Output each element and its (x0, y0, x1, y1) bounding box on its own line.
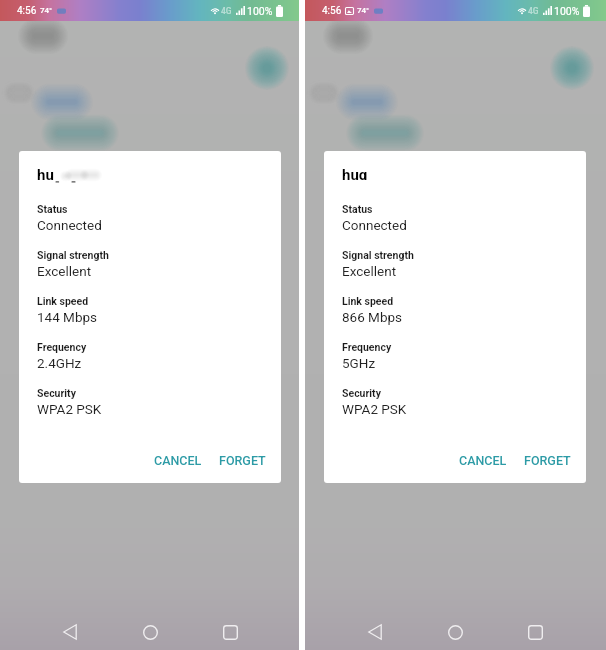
staticText: WPA2 PSK (342, 401, 407, 417)
staticText: Link speed (37, 295, 89, 307)
staticText: Security (342, 387, 381, 399)
staticText: hug (342, 166, 368, 180)
staticText: FORGET (524, 453, 571, 468)
button[interactable]: CANCEL (455, 447, 511, 474)
staticText: Excellent (37, 263, 92, 279)
staticText: Signal strength (342, 249, 414, 261)
staticText: Status (37, 203, 68, 215)
staticText: Connected (342, 217, 407, 233)
staticText: Security (37, 387, 76, 399)
staticText: Frequency (37, 341, 87, 353)
staticText: WPA2 PSK (37, 401, 102, 417)
button[interactable]: Back (50, 612, 90, 650)
staticText: Link speed (342, 295, 394, 307)
staticText: CANCEL (459, 453, 507, 468)
staticText: Signal strength (37, 249, 109, 261)
button[interactable]: Home (130, 612, 170, 650)
staticText: 74° (357, 6, 370, 15)
button[interactable]: Recent apps (210, 612, 250, 650)
button[interactable]: Recent apps (515, 612, 555, 650)
staticText: 5GHz (342, 355, 376, 371)
button[interactable]: FORGET (520, 447, 575, 474)
button[interactable]: Home (435, 612, 475, 650)
staticText: 74° (40, 6, 53, 15)
staticText: 4:56 (17, 5, 37, 17)
staticText: 4G (528, 6, 539, 16)
staticText: 144 Mbps (37, 309, 98, 325)
staticText: FORGET (219, 453, 266, 468)
staticText: 866 Mbps (342, 309, 403, 325)
staticText: Connected (37, 217, 102, 233)
button[interactable]: CANCEL (150, 447, 206, 474)
button[interactable]: Back (355, 612, 395, 650)
staticText: CANCEL (154, 453, 202, 468)
staticText: 100% (554, 5, 580, 17)
staticText: 2.4GHz (37, 355, 82, 371)
button[interactable]: FORGET (215, 447, 270, 474)
staticText: 100% (247, 5, 273, 17)
staticText: 4G (221, 6, 232, 16)
staticText: Excellent (342, 263, 397, 279)
staticText: hu (37, 166, 54, 180)
staticText: Status (342, 203, 373, 215)
staticText: 4:56 (322, 5, 342, 17)
staticText: Frequency (342, 341, 392, 353)
